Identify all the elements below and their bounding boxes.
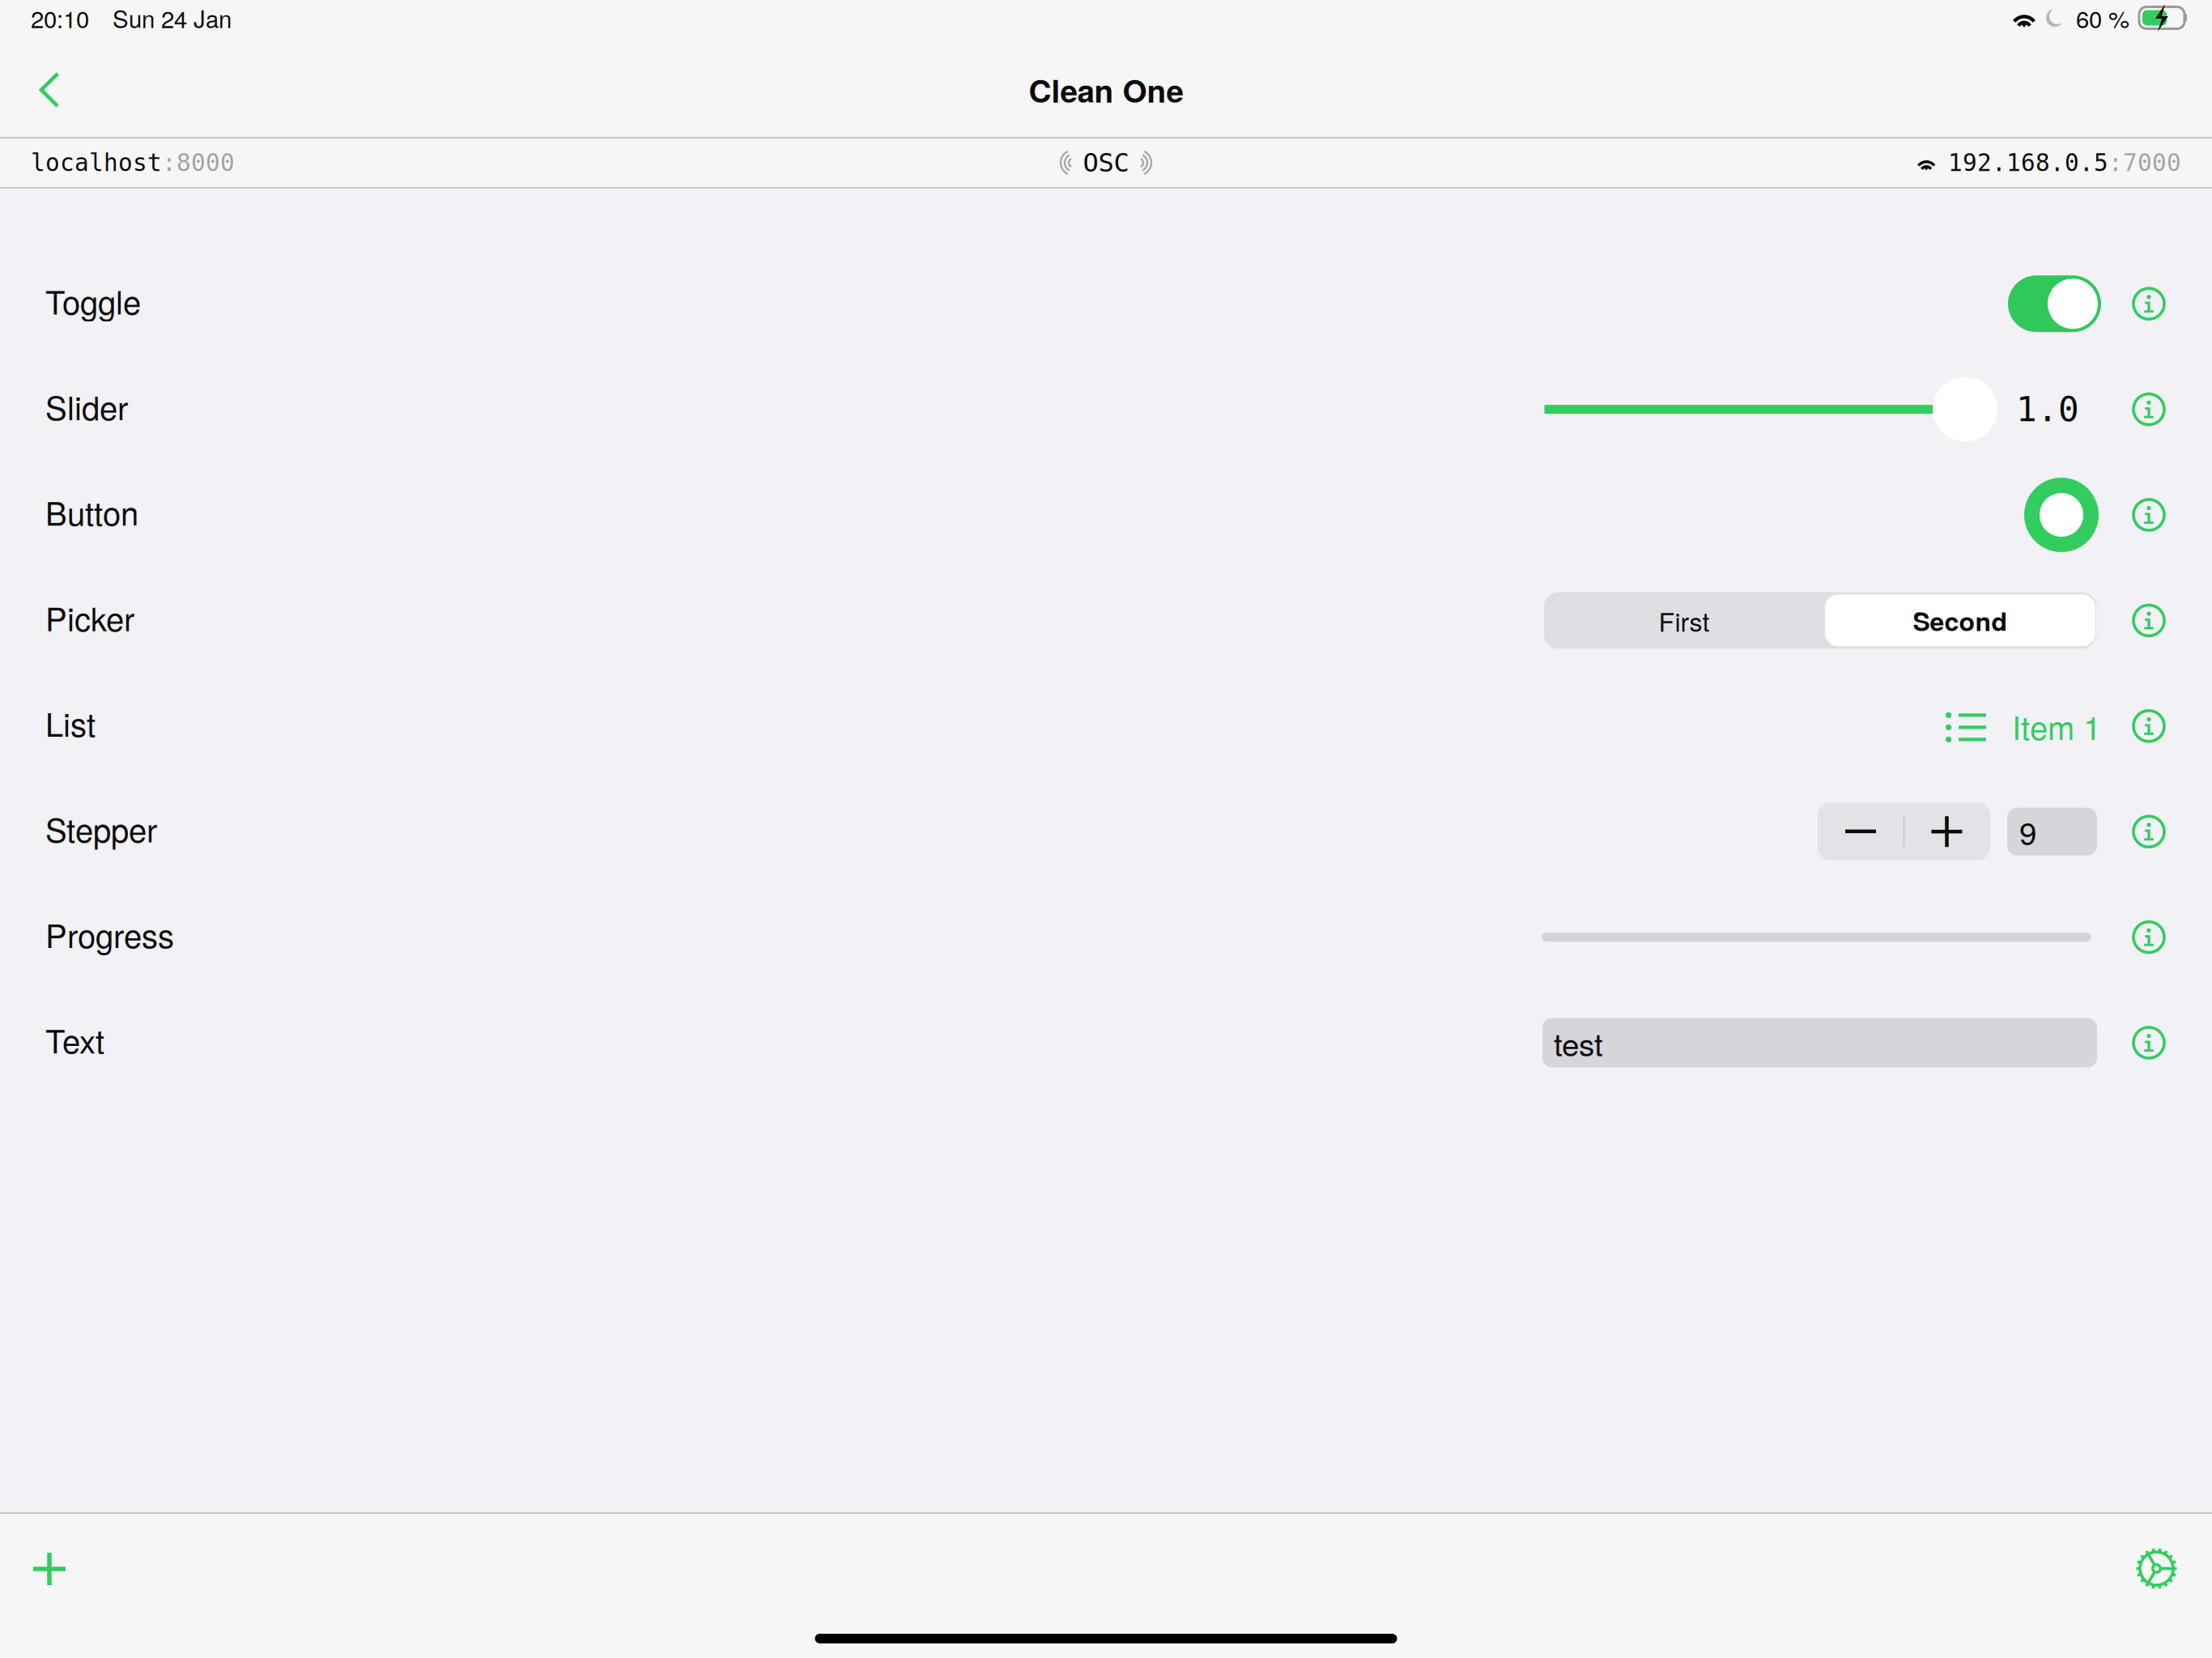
button[interactable]: Info about Slider xyxy=(2133,393,2165,426)
button[interactable]: Item 1 xyxy=(1943,703,2101,749)
button[interactable]: Button xyxy=(2024,478,2101,552)
staticText: Picker xyxy=(45,594,134,640)
staticText: OSC xyxy=(1083,148,1129,178)
staticText: localhost xyxy=(31,149,162,176)
staticText: test xyxy=(1554,1020,1603,1065)
staticText: Second xyxy=(1913,602,2008,639)
staticText: Toggle xyxy=(45,277,141,324)
staticText: Stepper xyxy=(45,805,157,852)
button[interactable]: Info about Text xyxy=(2133,1027,2165,1059)
staticText: Slider xyxy=(45,383,128,429)
button[interactable]: Info about Picker xyxy=(2133,604,2165,637)
staticText: 1.0 xyxy=(2016,389,2079,429)
button[interactable]: Toggle xyxy=(2008,275,2101,332)
button[interactable]: Settings xyxy=(2126,1541,2188,1596)
staticText: First xyxy=(1659,602,1710,639)
button[interactable]: Increment xyxy=(1904,803,1990,860)
staticText: 9 xyxy=(2019,809,2036,854)
staticText: :7000 xyxy=(2108,149,2181,176)
button[interactable]: Add xyxy=(16,1541,83,1596)
staticText: Item 1 xyxy=(2012,703,2101,749)
button[interactable]: Back xyxy=(23,57,76,123)
button[interactable]: Info about List xyxy=(2133,710,2165,742)
button[interactable]: Second xyxy=(1824,592,2096,649)
staticText: Button xyxy=(45,488,138,535)
staticText: Progress xyxy=(45,911,174,957)
staticText: Text xyxy=(45,1016,104,1063)
staticText: List xyxy=(45,700,96,746)
button[interactable]: First xyxy=(1544,592,1824,649)
button[interactable]: Decrement xyxy=(1818,803,1904,860)
staticText: 192.168.0.5 xyxy=(1948,149,2108,176)
button[interactable]: Info about Stepper xyxy=(2133,815,2165,848)
staticText: 60 % xyxy=(2076,1,2129,35)
button[interactable]: Info about Toggle xyxy=(2133,288,2165,320)
staticText: Clean One xyxy=(1029,67,1183,112)
button[interactable]: Info about Progress xyxy=(2133,921,2165,953)
staticText: :8000 xyxy=(162,149,235,176)
staticText: 20:10 xyxy=(31,1,89,35)
button[interactable]: Info about Button xyxy=(2133,499,2165,531)
staticText: Sun 24 Jan xyxy=(113,1,232,35)
